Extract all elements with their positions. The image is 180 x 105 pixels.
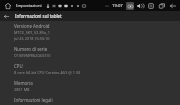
button[interactable]: Informazioni legali — [0, 92, 180, 103]
staticText: Jul 26 2018 16:50:10 — [14, 36, 50, 41]
button[interactable]: Volume — [136, 2, 144, 10]
button[interactable]: CPU — [0, 58, 180, 75]
staticText: MTCE_SKY_V2.89u_1 — [14, 30, 50, 35]
button[interactable]: Apps — [147, 2, 155, 10]
button[interactable]: Versione Android — [0, 22, 180, 41]
button[interactable]: Home — [3, 1, 12, 10]
button[interactable]: Recents — [158, 2, 166, 10]
staticText: 2891 MB — [14, 87, 30, 92]
staticText: 8 core 64-bit CPU Coretex-A53 @ 1.50 — [14, 70, 81, 75]
staticText: 19:07 — [112, 3, 123, 9]
staticText: Versione Android — [14, 23, 50, 29]
button[interactable]: Back — [2, 12, 11, 21]
staticText: Numero di serie — [14, 46, 48, 52]
staticText: Informazioni legali — [14, 97, 53, 103]
staticText: Memoria — [14, 80, 33, 86]
staticText: Informazioni sul tablet — [15, 13, 62, 19]
staticText: D1009MF862043310 — [14, 53, 51, 58]
button[interactable]: Screenshot — [126, 2, 134, 10]
staticText: Impostazioni — [16, 3, 42, 9]
button[interactable]: Back — [169, 2, 177, 10]
button[interactable]: Memoria — [0, 75, 180, 92]
button[interactable]: Numero di serie — [0, 41, 180, 58]
staticText: CPU — [14, 63, 23, 69]
